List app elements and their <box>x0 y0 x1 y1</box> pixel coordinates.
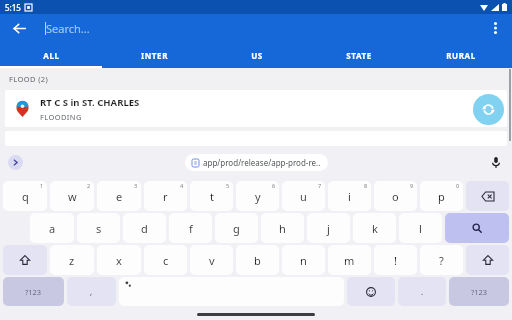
button[interactable]: ?123 <box>3 277 64 306</box>
button[interactable]: r <box>144 181 187 211</box>
staticText: q <box>22 189 29 204</box>
staticText: 1 <box>40 182 44 189</box>
staticText: US <box>251 50 263 61</box>
staticText: g <box>233 221 240 236</box>
staticText: p <box>438 189 445 204</box>
button[interactable]: Backspace <box>466 181 509 211</box>
button[interactable]: j <box>307 213 350 243</box>
button[interactable]: m <box>328 245 371 275</box>
staticText: e <box>116 189 123 204</box>
button[interactable]: y <box>236 181 279 211</box>
button[interactable]: d <box>123 213 166 243</box>
button[interactable]: Emoji <box>347 277 395 306</box>
button[interactable]: t <box>190 181 233 211</box>
button[interactable]: Refresh <box>473 94 504 125</box>
button[interactable]: l <box>399 213 442 243</box>
button[interactable]: RURAL <box>410 42 512 68</box>
button[interactable]: k <box>353 213 396 243</box>
staticText: n <box>300 253 307 268</box>
button[interactable]: Search... <box>45 18 90 38</box>
staticText: j <box>327 221 330 236</box>
staticText: f <box>189 221 193 236</box>
button[interactable]: Shift <box>466 245 509 275</box>
button[interactable]: o <box>374 181 417 211</box>
staticText: ? <box>439 253 444 268</box>
staticText: x <box>116 253 122 268</box>
button[interactable]: p <box>420 181 463 211</box>
button[interactable]: u <box>282 181 325 211</box>
staticText: v <box>209 253 215 268</box>
staticText: y <box>255 189 261 204</box>
staticText: 2 <box>87 182 91 189</box>
button[interactable]: Shift <box>3 245 47 275</box>
button[interactable]: RT C S in ST. CHARLES <box>5 90 507 127</box>
button[interactable]: Search <box>445 213 509 243</box>
button[interactable]: h <box>261 213 304 243</box>
staticText: 4 <box>180 182 184 189</box>
staticText: FLOOD (2) <box>9 74 49 84</box>
button[interactable]: STATE <box>308 42 410 68</box>
staticText: r <box>163 189 168 204</box>
staticText: STATE <box>346 50 372 61</box>
button[interactable]: f <box>169 213 212 243</box>
staticText: 8 <box>364 182 368 189</box>
staticText: s <box>96 221 102 236</box>
staticText: RURAL <box>446 50 476 61</box>
staticText: 0 <box>456 182 460 189</box>
staticText: INTER <box>141 50 168 61</box>
staticText: a <box>49 221 56 236</box>
staticText: o <box>392 189 399 204</box>
button[interactable]: q <box>3 181 47 211</box>
button[interactable]: ALL <box>0 42 103 68</box>
button[interactable]: a <box>30 213 74 243</box>
button[interactable]: w <box>50 181 94 211</box>
button[interactable]: Voice input <box>487 153 505 171</box>
button[interactable]: c <box>144 245 187 275</box>
button[interactable]: Expand toolbar <box>8 155 23 170</box>
staticText: ?123 <box>25 287 42 297</box>
staticText: w <box>68 189 77 204</box>
staticText: 5 <box>226 182 230 189</box>
button[interactable]: US <box>206 42 308 68</box>
button[interactable]: n <box>282 245 325 275</box>
staticText: 9 <box>410 182 414 189</box>
staticText: ALL <box>43 50 60 61</box>
staticText: d <box>141 221 148 236</box>
staticText: h <box>279 221 286 236</box>
staticText: i <box>348 189 351 204</box>
button[interactable]: ?123 <box>449 277 509 306</box>
button[interactable]: Space <box>119 277 344 306</box>
staticText: . <box>421 286 424 297</box>
button[interactable]: app/prod/release/app-prod-re.. <box>185 154 328 171</box>
staticText: 3 <box>134 182 138 189</box>
staticText: Search... <box>46 21 90 36</box>
button[interactable]: b <box>236 245 279 275</box>
staticText: z <box>69 253 75 268</box>
button[interactable]: g <box>215 213 258 243</box>
button[interactable]: e <box>97 181 141 211</box>
button[interactable]: z <box>50 245 94 275</box>
button[interactable]: ? <box>420 245 463 275</box>
staticText: u <box>300 189 307 204</box>
staticText: RT C S in ST. CHARLES <box>40 96 140 109</box>
button[interactable]: v <box>190 245 233 275</box>
staticText: app/prod/release/app-prod-re.. <box>203 157 321 168</box>
button[interactable]: More options <box>484 17 506 39</box>
staticText: c <box>163 253 169 268</box>
button[interactable]: s <box>77 213 120 243</box>
staticText: , <box>90 286 93 297</box>
staticText: t <box>210 189 214 204</box>
staticText: ! <box>394 253 397 268</box>
button[interactable]: x <box>97 245 141 275</box>
button[interactable]: , <box>67 277 116 306</box>
staticText: FLOODING <box>40 112 82 122</box>
staticText: l <box>419 221 422 236</box>
button[interactable]: Back <box>8 17 30 39</box>
button[interactable]: i <box>328 181 371 211</box>
button[interactable]: INTER <box>103 42 206 68</box>
staticText: ?123 <box>471 287 488 297</box>
staticText: b <box>254 253 261 268</box>
button[interactable]: ! <box>374 245 417 275</box>
